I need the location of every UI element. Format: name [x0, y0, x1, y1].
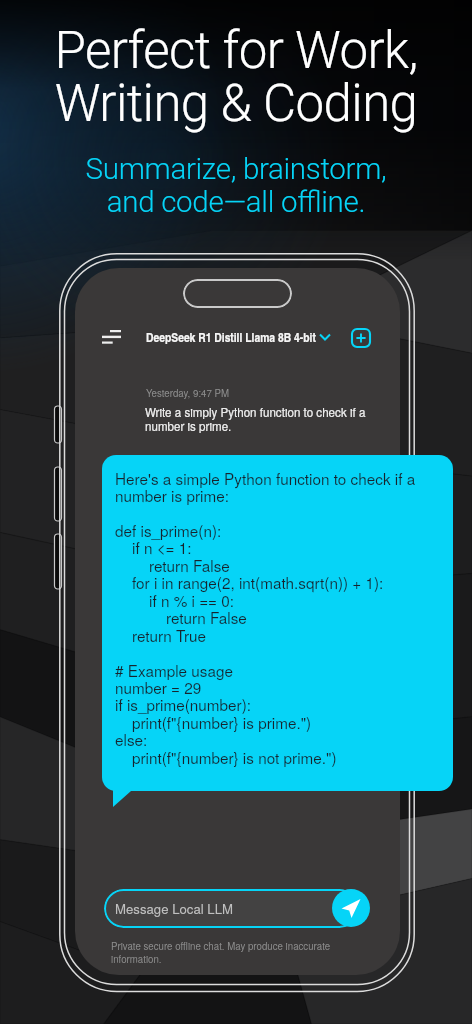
staticText: Summarize, brainstorm, and code—all offl… — [0, 152, 472, 219]
button[interactable]: DeepSeek R1 Distill Llama 8B 4-bit — [146, 327, 334, 347]
staticText: return True — [115, 624, 206, 646]
staticText: Message Local LLM — [115, 899, 234, 918]
staticText: number is prime: — [115, 484, 229, 506]
staticText: else: — [115, 728, 148, 750]
staticText: number = 29 — [115, 676, 202, 698]
staticText: DeepSeek R1 Distill Llama 8B 4-bit — [146, 328, 316, 346]
button[interactable]: New chat — [351, 328, 371, 348]
staticText: Write a simply Python function to check … — [145, 404, 366, 434]
staticText: # Example usage — [115, 659, 234, 681]
staticText: print(f"{number} is prime.") — [115, 711, 312, 733]
button[interactable]: Write a simply Python function to check … — [145, 404, 366, 434]
button[interactable]: Message Local LLM — [104, 889, 359, 928]
staticText: if n % i == 0: — [115, 589, 235, 611]
staticText: def is_prime(n): — [115, 519, 222, 541]
staticText: for i in range(2, int(math.sqrt(n)) + 1)… — [115, 571, 384, 593]
button[interactable]: Menu — [95, 322, 123, 346]
staticText: return False — [115, 554, 230, 576]
staticText: if n <= 1: — [115, 536, 192, 558]
staticText: Private secure offline chat. May produce… — [111, 939, 331, 966]
staticText: if is_prime(number): — [115, 693, 251, 715]
staticText: Yesterday, 9:47 PM — [146, 386, 230, 400]
button[interactable]: Send — [332, 889, 370, 927]
staticText: Perfect for Work, Writing & Coding — [0, 21, 472, 133]
staticText: Here's a simple Python function to check… — [115, 467, 416, 489]
staticText: return False — [115, 606, 247, 628]
button[interactable]: Here's a simple Python function to check… — [102, 455, 453, 791]
staticText: print(f"{number} is not prime.") — [115, 746, 337, 768]
